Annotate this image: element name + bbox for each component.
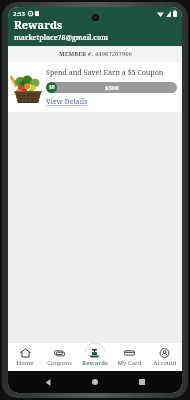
staticText: $0 xyxy=(49,84,55,91)
staticText: Account xyxy=(153,359,177,367)
button[interactable]: View Details xyxy=(46,97,88,107)
staticText: My Card xyxy=(117,359,142,367)
button[interactable]: Account xyxy=(147,343,182,371)
button[interactable]: Spend and Save! Earn a $5 Coupon xyxy=(8,62,182,112)
button[interactable]: Home xyxy=(88,375,102,389)
staticText: Rewards xyxy=(14,17,63,32)
staticText: $500 xyxy=(105,84,119,92)
staticText: Spend and Save! Earn a $5 Coupon xyxy=(46,68,164,78)
button[interactable]: Back xyxy=(41,375,55,389)
staticText: 44987267966 xyxy=(95,50,132,58)
button[interactable]: My Card xyxy=(112,343,147,371)
button[interactable]: Rewards xyxy=(77,343,112,371)
button[interactable]: Coupons xyxy=(42,343,77,371)
button[interactable]: Recent apps xyxy=(135,375,149,389)
staticText: marketplace78@gmail.com xyxy=(14,33,108,43)
button[interactable]: Home xyxy=(8,343,42,371)
staticText: View Details xyxy=(46,97,88,107)
staticText: Rewards xyxy=(82,359,108,367)
staticText: MEMBER #: xyxy=(59,50,95,58)
staticText: Home xyxy=(16,359,34,367)
staticText: Coupons xyxy=(47,359,72,367)
staticText: 2:53 xyxy=(13,10,25,18)
